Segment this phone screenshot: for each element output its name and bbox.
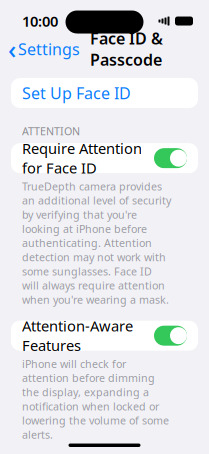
staticText: 10:00 bbox=[22, 11, 58, 31]
staticText: Set Up Face ID bbox=[22, 82, 131, 104]
staticText: Attention-Aware Features bbox=[22, 316, 133, 355]
staticText: Settings bbox=[18, 38, 80, 60]
button[interactable]: Attention-Aware Features bbox=[11, 321, 198, 351]
staticText: TrueDepth camera provides an additional … bbox=[22, 179, 171, 307]
staticText: ‹ bbox=[8, 32, 16, 66]
button[interactable]: ‹ bbox=[0, 32, 80, 66]
button[interactable]: Set Up Face ID bbox=[11, 78, 198, 108]
staticText: ATTENTION bbox=[22, 124, 80, 138]
button[interactable]: Require Attention for Face ID bbox=[11, 143, 198, 173]
staticText: Require Attention for Face ID bbox=[22, 139, 142, 178]
staticText: iPhone will check for attention before d… bbox=[22, 357, 169, 442]
staticText: Face ID & Passcode bbox=[90, 28, 163, 70]
